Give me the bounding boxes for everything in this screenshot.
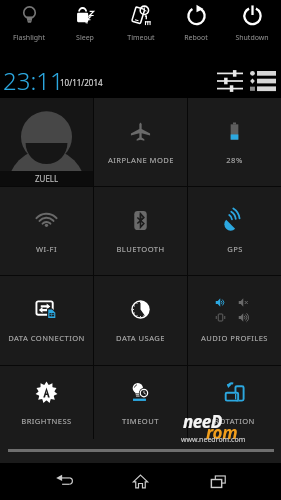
staticText: BRIGHTNESS [21,416,72,426]
button[interactable]: TIMEOUT [94,366,187,439]
button[interactable]: AIRPLANE MODE [94,98,187,186]
button[interactable]: BLUETOOTH [94,187,187,275]
staticText: Timeout [127,33,155,43]
staticText: TIMEOUT [122,416,159,426]
button[interactable]: AUDIO PROFILES [188,276,281,365]
staticText: AUDIO PROFILES [201,333,268,343]
staticText: rom [206,421,238,444]
staticText: www.needrom.com [181,435,246,445]
staticText: Flashlight [13,33,45,43]
staticText: WI-FI [36,244,57,254]
staticText: DATA USAGE [116,333,165,343]
staticText: Reboot [184,33,208,43]
button[interactable]: Flashlight [2,0,56,48]
staticText: ZUELL [35,173,59,184]
staticText: ROTATION [214,416,255,426]
button[interactable]: Shutdown [225,0,279,48]
button[interactable]: BRIGHTNESS [0,366,93,439]
staticText: Shutdown [235,33,269,43]
button[interactable]: Recents [192,463,245,500]
button[interactable]: ROTATION [188,366,281,439]
button[interactable]: 28% [188,98,281,186]
button[interactable]: ZUELL [0,98,93,186]
staticText: AIRPLANE MODE [108,155,174,165]
staticText: GPS [227,244,243,254]
staticText: BLUETOOTH [116,244,165,254]
button[interactable]: WI-FI [0,187,93,275]
button[interactable]: DATA CONNECTION [0,276,93,365]
button[interactable]: Reboot [169,0,223,48]
button[interactable]: Back [36,463,89,500]
staticText: Sleep [76,33,94,43]
staticText: 23:11 [3,64,64,97]
button[interactable]: Timeout [114,0,168,48]
button[interactable]: Notifications [238,64,281,98]
button[interactable]: Sleep [58,0,112,48]
staticText: neeD [183,410,222,433]
button[interactable]: Quick settings [205,64,255,98]
button[interactable]: GPS [188,187,281,275]
staticText: DATA CONNECTION [8,333,85,343]
button[interactable]: DATA USAGE [94,276,187,365]
staticText: 10/11/2014 [60,77,103,88]
button[interactable]: Home [114,463,167,500]
staticText: 28% [226,155,243,165]
